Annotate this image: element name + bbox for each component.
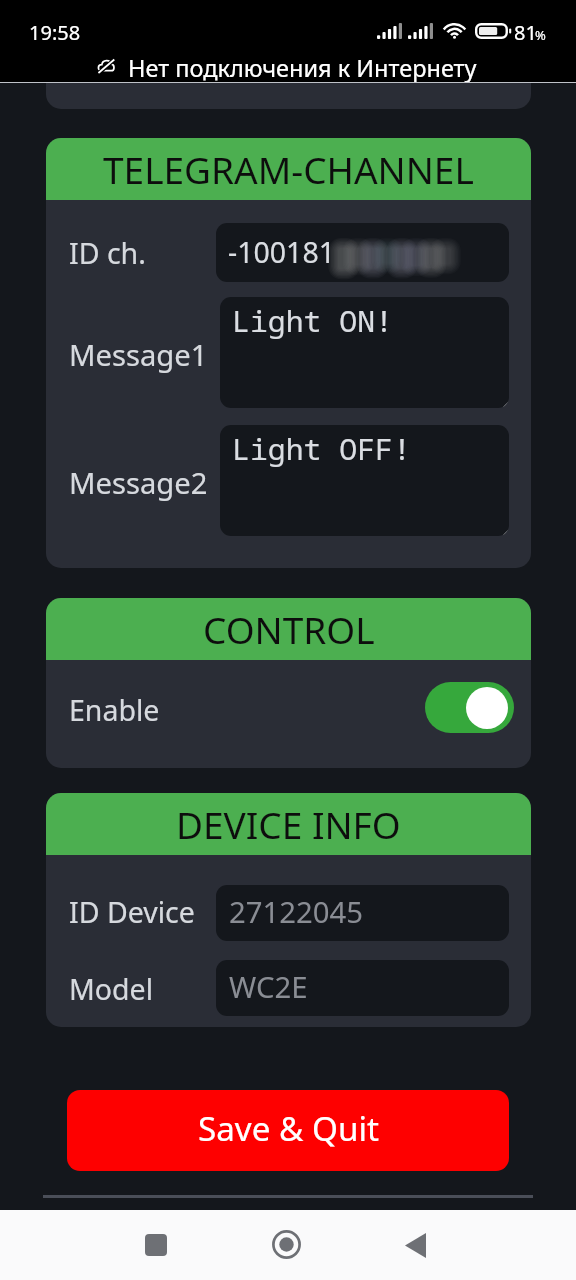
staticText: DEVICE INFO bbox=[176, 799, 401, 849]
button[interactable]: Save & Quit bbox=[67, 1090, 509, 1171]
staticText: ID ch. bbox=[69, 234, 146, 273]
button[interactable]: 27122045 bbox=[216, 885, 509, 941]
staticText: -100181 bbox=[228, 233, 335, 272]
staticText: % bbox=[535, 26, 546, 44]
button[interactable]: Light ON! bbox=[220, 297, 509, 408]
staticText: Model bbox=[69, 970, 154, 1009]
button[interactable]: Enable bbox=[425, 682, 514, 733]
staticText: Light ON! bbox=[232, 300, 393, 341]
staticText: Message1 bbox=[69, 335, 208, 375]
button[interactable]: Enable bbox=[46, 660, 531, 768]
staticText: ID Device bbox=[69, 893, 195, 932]
button[interactable]: Light OFF! bbox=[220, 425, 509, 536]
staticText: WC2E bbox=[229, 967, 308, 1007]
staticText: CONTROL bbox=[203, 604, 375, 654]
staticText: Нет подключения к Интернету bbox=[128, 52, 477, 84]
staticText: 27122045 bbox=[229, 892, 364, 932]
staticText: 81 bbox=[514, 19, 537, 46]
button[interactable]: WC2E bbox=[216, 960, 509, 1016]
staticText: Light OFF! bbox=[232, 428, 411, 469]
button[interactable]: Back bbox=[383, 1210, 447, 1280]
staticText: TELEGRAM-CHANNEL bbox=[103, 144, 474, 194]
staticText: 19:58 bbox=[29, 19, 81, 46]
staticText: Message2 bbox=[69, 463, 208, 503]
button[interactable]: -100181 bbox=[216, 223, 509, 282]
staticText: Enable bbox=[69, 691, 160, 730]
staticText: Save & Quit bbox=[198, 1106, 379, 1151]
button[interactable]: Home bbox=[254, 1210, 318, 1280]
button[interactable]: Recent apps bbox=[124, 1210, 188, 1280]
